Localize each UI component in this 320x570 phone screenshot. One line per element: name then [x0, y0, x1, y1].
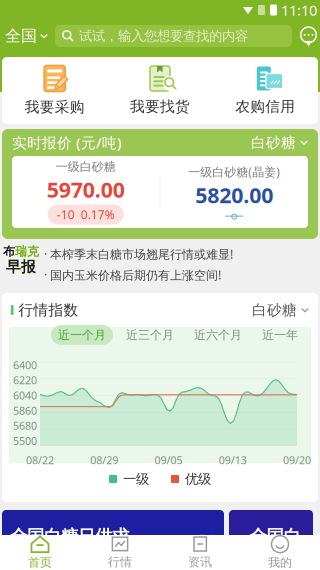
staticText: 近六个月	[194, 327, 242, 342]
staticText: 5970.00	[47, 175, 125, 203]
button[interactable]: 全国白	[229, 510, 313, 556]
staticText: 行情指数	[18, 301, 78, 319]
button[interactable]: 全国	[0, 21, 55, 51]
staticText: · 本榨季末白糖市场翘尾行情或难显!	[44, 246, 233, 262]
staticText: 我要采购	[25, 98, 85, 116]
staticText: 09/05	[154, 453, 182, 467]
staticText: 08/22	[26, 453, 54, 467]
staticText: 5860	[13, 403, 37, 418]
staticText: 6400	[13, 358, 37, 372]
button[interactable]: 我要找货	[107, 65, 213, 115]
staticText: 09/13	[219, 453, 247, 467]
button[interactable]: 农购信用	[213, 65, 318, 115]
button[interactable]: 资讯	[160, 533, 240, 570]
staticText: 全国白糖日供求	[10, 526, 129, 547]
staticText: 资讯	[188, 555, 212, 569]
staticText: 2000+品类	[173, 533, 216, 545]
staticText: -10	[57, 207, 75, 222]
staticText: 试试，输入您想要查找的内容	[79, 28, 248, 44]
staticText: 0.17%	[81, 207, 115, 222]
button[interactable]: 布	[2, 239, 318, 287]
staticText: 08/29	[90, 453, 118, 467]
button[interactable]: Messages	[292, 26, 320, 45]
staticText: 近一年	[262, 327, 298, 342]
staticText: 农购信用	[235, 97, 295, 115]
staticText: 11:10	[281, 0, 317, 20]
staticText: 布	[3, 244, 15, 259]
button[interactable]: 行情	[80, 533, 160, 570]
button[interactable]: 近一年	[255, 325, 305, 345]
button[interactable]: 我的	[240, 532, 320, 570]
staticText: 首页	[28, 555, 52, 570]
button[interactable]: 近三个月	[119, 325, 181, 345]
staticText: 优级	[185, 471, 211, 487]
staticText: 行情	[108, 555, 132, 569]
staticText: 5820.00	[195, 181, 273, 209]
staticText: 白砂糖	[252, 301, 297, 319]
staticText: · 国内玉米价格后期仍有上涨空间!	[44, 267, 221, 283]
button[interactable]: 我要采购	[2, 65, 107, 116]
staticText: 6040	[13, 388, 37, 402]
staticText: 全国	[5, 26, 37, 46]
button[interactable]: 近一个月	[51, 325, 113, 345]
button[interactable]: 白砂糖	[251, 133, 308, 151]
staticText: 我的	[268, 555, 292, 570]
button[interactable]: 白砂糖	[252, 301, 309, 319]
staticText: 我要找货	[130, 97, 190, 115]
staticText: 09/20	[283, 453, 311, 467]
staticText: 一级白砂糖	[56, 159, 116, 174]
staticText: 5680	[13, 419, 37, 433]
staticText: 白砂糖	[251, 133, 296, 151]
button[interactable]: 全国白糖日供求	[2, 510, 224, 556]
staticText: 实时报价 (元/吨)	[12, 133, 122, 152]
staticText: 一级	[123, 471, 149, 487]
button[interactable]: 近六个月	[187, 325, 249, 345]
staticText: 早报	[6, 258, 36, 276]
staticText: 6220	[13, 373, 37, 387]
staticText: 5500	[13, 434, 37, 448]
staticText: 近一个月	[58, 327, 106, 342]
staticText: 一级白砂糖(晶姜)	[188, 164, 280, 180]
staticText: 近三个月	[126, 327, 174, 342]
button[interactable]: 首页	[0, 532, 80, 570]
staticText: 全国白	[249, 526, 300, 547]
staticText: 瑞克	[15, 244, 39, 259]
